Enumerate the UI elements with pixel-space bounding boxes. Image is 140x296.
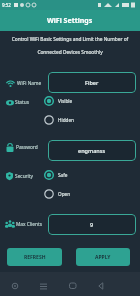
- button[interactable]: Visible: [41, 94, 87, 108]
- button[interactable]: engmanss: [48, 140, 136, 161]
- button[interactable]: [38, 280, 50, 292]
- staticText: Hidden: [58, 117, 74, 123]
- staticText: WiFi Name: [17, 80, 42, 87]
- staticText: Security: [15, 173, 34, 180]
- staticText: Open: [58, 191, 71, 197]
- button[interactable]: [9, 280, 21, 292]
- button[interactable]: 9: [48, 214, 136, 235]
- staticText: Safe: [58, 172, 68, 178]
- button[interactable]: [67, 280, 79, 292]
- button[interactable]: WiFi Settings: [0, 10, 140, 31]
- staticText: Connected Devices Smoothly: [0, 49, 140, 56]
- button[interactable]: Open: [41, 187, 87, 201]
- button[interactable]: APPLY: [76, 248, 130, 266]
- staticText: Status: [15, 99, 30, 106]
- staticText: Password: [16, 144, 38, 151]
- staticText: 9: [90, 221, 94, 228]
- button[interactable]: Hidden: [41, 113, 87, 127]
- staticText: REFRESH: [24, 254, 46, 261]
- staticText: Control WiFi Basic Settings and Limit th…: [0, 36, 140, 43]
- button[interactable]: [96, 280, 108, 292]
- staticText: 9:52: [2, 2, 11, 8]
- staticText: Visible: [58, 98, 73, 104]
- staticText: Max Clients: [16, 221, 43, 228]
- staticText: engmanss: [78, 147, 106, 154]
- staticText: Fiber: [85, 79, 99, 86]
- button[interactable]: REFRESH: [7, 248, 62, 266]
- button[interactable]: Safe: [41, 168, 87, 182]
- button[interactable]: Fiber: [48, 72, 136, 93]
- staticText: APPLY: [95, 254, 111, 261]
- staticText: WiFi Settings: [47, 16, 93, 26]
